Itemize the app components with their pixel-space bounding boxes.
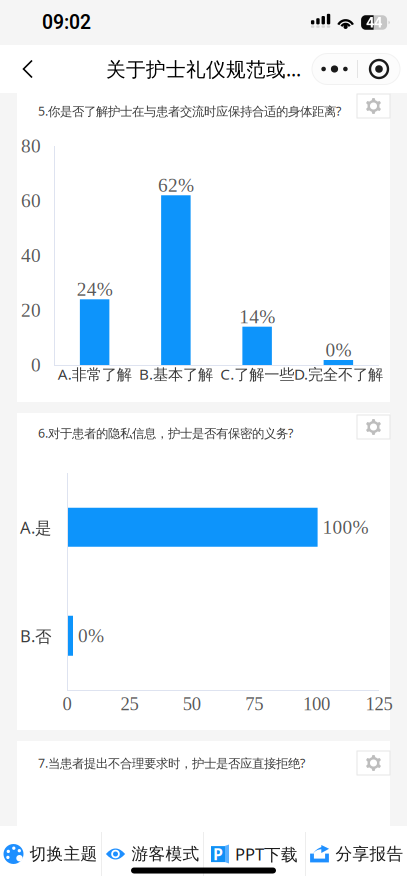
staticText: 5.你是否了解护士在与患者交流时应保持合适的身体距离? — [38, 103, 341, 119]
button[interactable]: More options — [312, 53, 400, 84]
staticText: 切换主题 — [29, 843, 97, 864]
staticText: 0 — [62, 694, 71, 714]
staticText: B.基本了解 — [139, 364, 213, 384]
button[interactable]: Back — [6, 46, 50, 92]
staticText: 0% — [78, 625, 104, 646]
staticText: 09:02 — [42, 11, 91, 34]
staticText: A.是 — [20, 516, 52, 539]
staticText: B.否 — [20, 624, 52, 647]
staticText: 关于护士礼仪规范或... — [106, 56, 301, 82]
staticText: 6.对于患者的隐私信息，护士是否有保密的义务? — [38, 425, 293, 441]
staticText: 0 — [31, 354, 41, 376]
staticText: 50 — [183, 694, 201, 714]
staticText: 24% — [77, 279, 113, 300]
staticText: 20 — [21, 299, 41, 321]
staticText: 62% — [158, 175, 194, 196]
staticText: 100 — [303, 694, 330, 714]
button[interactable]: P — [204, 826, 305, 882]
staticText: 100% — [323, 516, 369, 538]
staticText: C.了解一些 — [220, 364, 294, 384]
button[interactable]: Chart options — [357, 415, 390, 439]
staticText: 分享报告 — [335, 843, 403, 864]
staticText: P — [213, 843, 223, 865]
button[interactable]: 切换主题 — [0, 826, 101, 882]
staticText: 44 — [366, 14, 382, 31]
staticText: 7.当患者提出不合理要求时，护士是否应直接拒绝? — [38, 755, 305, 771]
staticText: 80 — [21, 135, 41, 157]
staticText: A.非常了解 — [58, 364, 132, 384]
button[interactable]: Chart options — [357, 751, 390, 775]
staticText: 游客模式 — [131, 843, 199, 864]
staticText: 125 — [365, 694, 392, 714]
button[interactable]: Chart options — [357, 94, 390, 118]
staticText: D.完全不了解 — [294, 364, 383, 384]
staticText: 25 — [120, 694, 138, 714]
staticText: 40 — [21, 245, 41, 266]
staticText: PPT下载 — [235, 843, 298, 865]
staticText: 75 — [245, 694, 263, 714]
staticText: 0% — [325, 339, 351, 361]
staticText: 60 — [21, 190, 41, 211]
button[interactable]: 分享报告 — [306, 826, 407, 882]
button[interactable]: 游客模式 — [102, 826, 203, 882]
staticText: 14% — [239, 306, 275, 327]
